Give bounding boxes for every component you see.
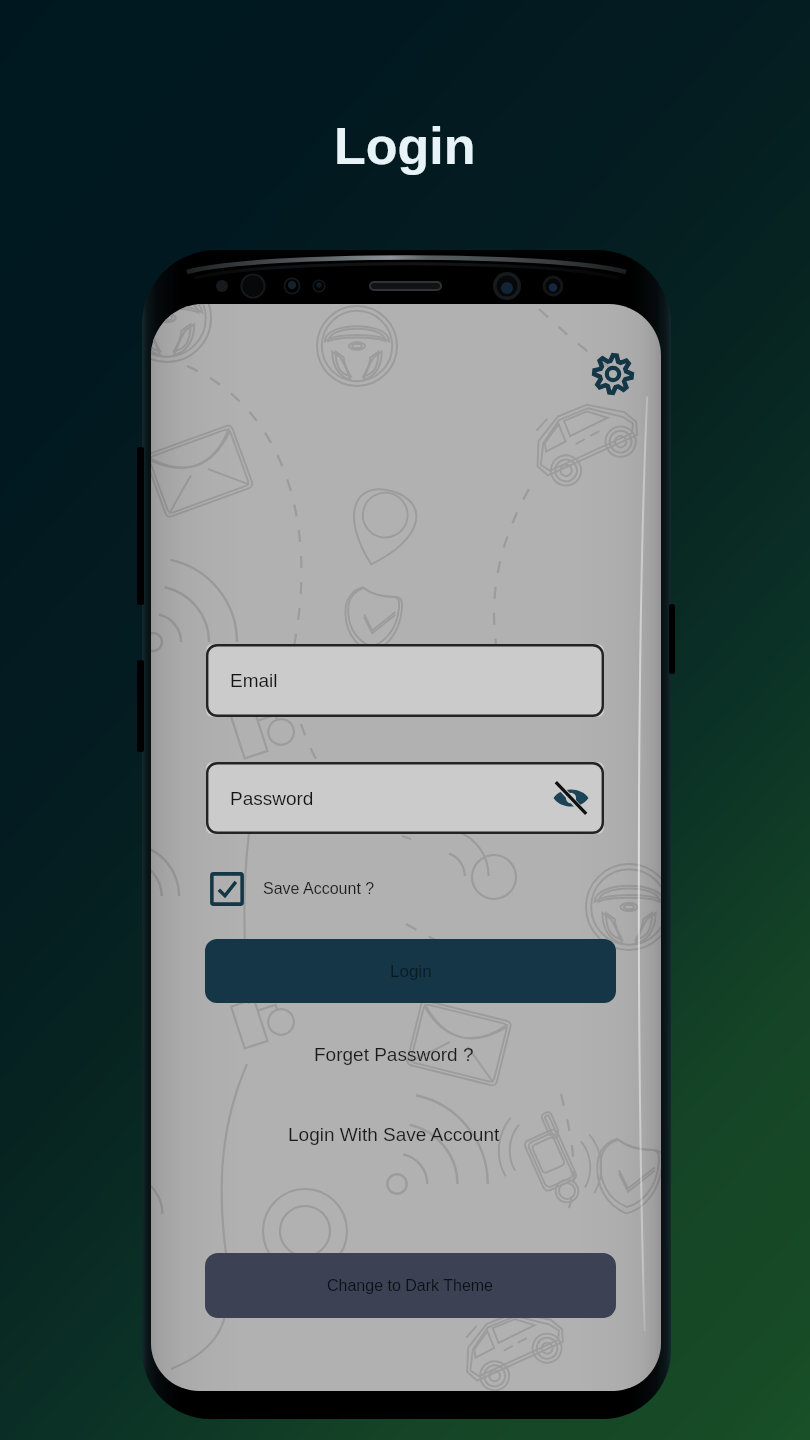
button[interactable]: Settings <box>588 349 638 399</box>
staticText: Login <box>334 117 476 175</box>
button[interactable]: Save Account ? <box>210 870 375 908</box>
button[interactable]: Login <box>205 939 616 1003</box>
button[interactable]: Email <box>206 644 604 717</box>
staticText: Login With Save Account <box>288 1124 500 1145</box>
button[interactable]: Forget Password ? <box>214 1034 574 1074</box>
staticText: Password <box>230 788 314 809</box>
button[interactable]: Login With Save Account <box>214 1114 574 1154</box>
button[interactable]: Change to Dark Theme <box>205 1253 616 1318</box>
staticText: Save Account ? <box>263 880 375 898</box>
staticText: Change to Dark Theme <box>327 1277 494 1295</box>
staticText: Login <box>390 962 432 981</box>
staticText: Forget Password ? <box>314 1044 474 1065</box>
staticText: Email <box>230 670 278 691</box>
button[interactable]: Password <box>206 762 604 834</box>
